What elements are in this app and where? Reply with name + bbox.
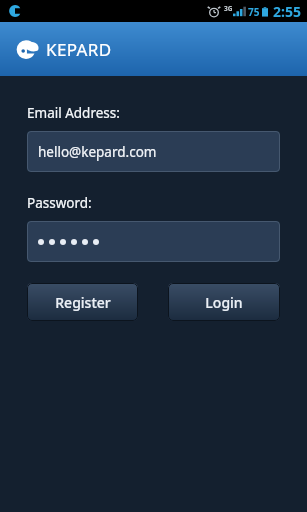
staticText: KEPARD — [46, 38, 112, 61]
staticText: Password: — [27, 194, 92, 212]
staticText: 3G — [224, 4, 233, 13]
button[interactable]: Register — [27, 283, 138, 321]
button[interactable]: hello@kepard.com — [27, 131, 280, 172]
staticText: 2:55 — [273, 2, 301, 21]
staticText: hello@kepard.com — [38, 143, 157, 161]
staticText: Register — [55, 293, 111, 312]
button[interactable]: Login — [168, 283, 280, 321]
staticText: Email Address: — [27, 104, 120, 122]
staticText: 75 — [248, 5, 260, 19]
staticText: Login — [205, 293, 243, 312]
button[interactable] — [27, 221, 280, 262]
